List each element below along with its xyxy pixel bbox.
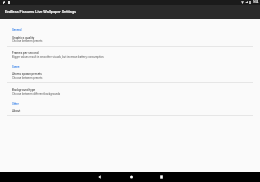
button[interactable]: Home [116, 172, 146, 182]
staticText: 9:04 [253, 1, 259, 4]
staticText: Atoms spawn presets [12, 72, 42, 76]
button[interactable] [0, 83, 260, 98]
staticText: Bigger values result in smoother visuals… [12, 55, 105, 58]
staticText: Background type [12, 88, 36, 92]
staticText: Frames per second [12, 51, 39, 55]
staticText: Choose between presets [12, 76, 43, 79]
button[interactable] [0, 33, 260, 47]
button[interactable] [0, 69, 260, 82]
staticText: Choose between presets [12, 39, 43, 42]
staticText: Other [12, 102, 19, 105]
staticText: Graphics quality [12, 36, 35, 40]
staticText: General [12, 28, 22, 31]
staticText: Endless Fissures Live Wallpaper Settings [5, 9, 77, 14]
button[interactable] [0, 47, 260, 62]
button[interactable]: Back [84, 172, 114, 182]
button[interactable] [0, 106, 260, 115]
button[interactable]: Recent apps [146, 172, 176, 182]
staticText: About [12, 109, 21, 113]
staticText: Choose between different backgrounds [12, 92, 61, 95]
staticText: Scene [12, 65, 20, 68]
